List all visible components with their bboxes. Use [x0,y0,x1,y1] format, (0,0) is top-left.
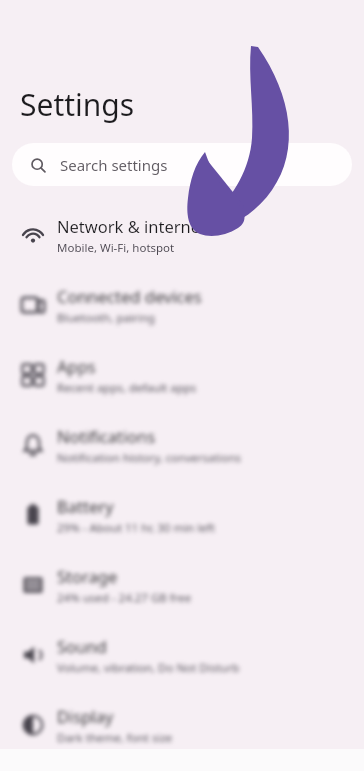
button[interactable]: Display [0,690,364,760]
staticText: 29% - About 11 hr, 30 min left [57,520,215,536]
staticText: Battery [57,495,114,517]
button[interactable]: Battery [0,480,364,550]
button[interactable]: Storage [0,550,364,620]
staticText: Mobile, Wi-Fi, hotspot [57,240,175,256]
staticText: Search settings [60,155,168,175]
staticText: Display [57,705,114,727]
staticText: 24% used - 24.27 GB free [57,590,192,606]
button[interactable]: Sound [0,620,364,690]
staticText: Settings [20,84,135,125]
button[interactable]: Apps [0,340,364,410]
staticText: Volume, vibration, Do Not Disturb [57,660,240,676]
staticText: Connected devices [57,285,202,307]
button[interactable]: Network & internet [0,200,364,270]
staticText: Storage [57,565,118,587]
staticText: Sound [57,635,107,657]
staticText: Notifications [57,425,156,447]
staticText: Dark theme, font size [57,730,173,746]
staticText: Network & internet [57,215,207,237]
staticText: Bluetooth, pairing [57,310,155,326]
other: Pointer arrow highlighting Network & int… [0,0,364,771]
staticText: Apps [57,355,96,377]
button[interactable]: Search settings [12,143,352,186]
staticText: Recent apps, default apps [57,380,197,396]
button[interactable]: Connected devices [0,270,364,340]
button[interactable]: Notifications [0,410,364,480]
staticText: Notification history, conversations [57,450,242,466]
